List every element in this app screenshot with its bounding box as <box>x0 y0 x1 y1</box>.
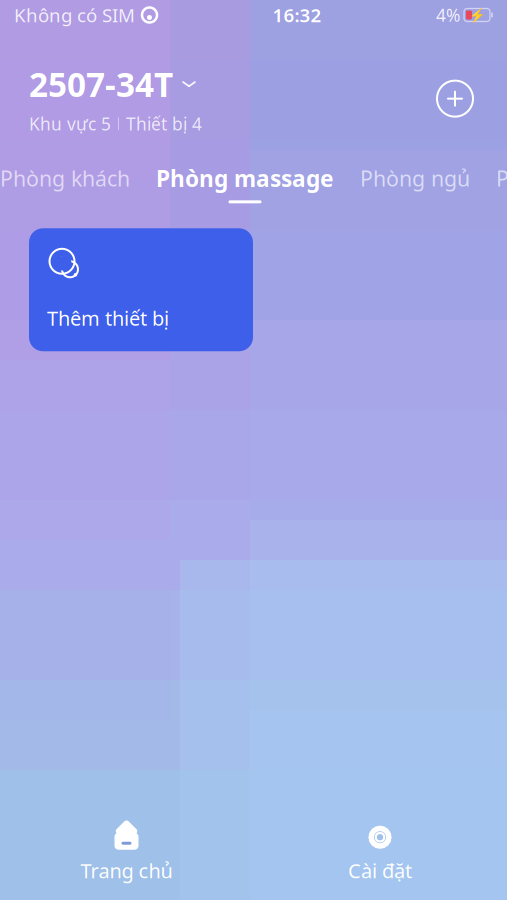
button[interactable]: Trang chủ <box>0 821 253 887</box>
button[interactable]: Cài đặt <box>253 821 507 887</box>
button[interactable]: Phòng bếp <box>496 164 507 202</box>
staticText: Phòng ngủ <box>360 164 470 192</box>
staticText: Cài đặt <box>348 857 412 884</box>
button[interactable]: Thêm thiết bị <box>29 228 253 351</box>
button[interactable]: Phòng massage <box>156 163 334 203</box>
staticText: Thiết bị 4 <box>126 112 202 135</box>
staticText: Khu vực 5 <box>29 112 111 135</box>
staticText: Không có SIM <box>14 3 135 27</box>
button[interactable]: Phòng ngủ <box>360 164 470 202</box>
staticText: 16:32 <box>272 3 321 27</box>
staticText: Phòng bếp <box>496 164 507 192</box>
staticText: Phòng khách <box>0 164 130 192</box>
button[interactable]: 2507-34T <box>29 62 197 106</box>
staticText: Phòng massage <box>156 163 334 193</box>
staticText: 2507-34T <box>29 62 173 106</box>
button[interactable]: Phòng khách <box>0 164 130 202</box>
staticText: ⚡ <box>468 7 485 23</box>
staticText: Trang chủ <box>80 857 172 884</box>
staticText: Thêm thiết bị <box>47 305 169 331</box>
button[interactable]: Thêm <box>432 76 478 122</box>
staticText: 4% <box>436 3 460 26</box>
